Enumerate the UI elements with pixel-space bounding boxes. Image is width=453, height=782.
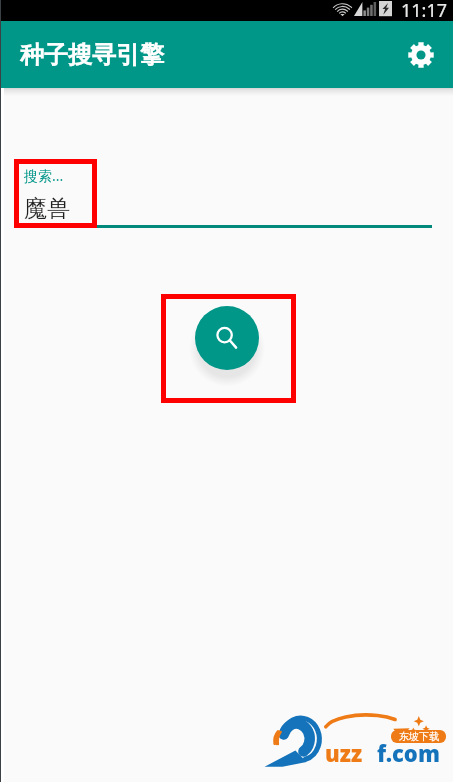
button[interactable]: Settings: [398, 32, 444, 78]
staticText: 东坡下载: [399, 730, 439, 743]
staticText: 11:17: [401, 0, 448, 19]
staticText: 种子搜寻引擎: [20, 40, 164, 70]
staticText: 搜索...: [24, 166, 64, 185]
staticText: 魔兽: [24, 194, 70, 223]
staticText: uzz: [325, 738, 363, 768]
button[interactable]: Search: [195, 306, 259, 370]
staticText: f.com: [377, 738, 440, 768]
